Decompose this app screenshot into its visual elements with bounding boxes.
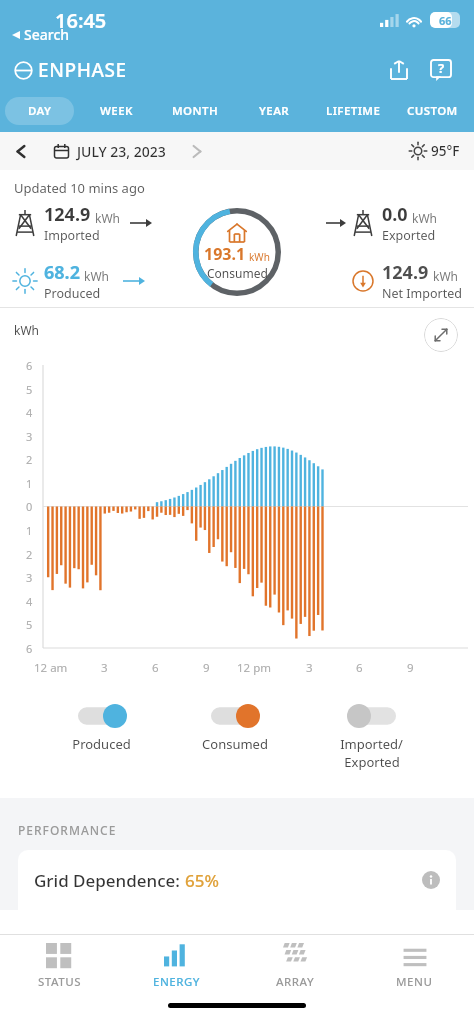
staticText: Consumed [207, 265, 268, 281]
staticText: 12 pm [237, 660, 271, 676]
button[interactable]: Share [382, 53, 416, 87]
staticText: 95°F [431, 142, 460, 160]
staticText: MENU [396, 974, 433, 990]
button[interactable]: Grid Dependence: [18, 850, 456, 910]
staticText: 9 [407, 660, 414, 676]
staticText: 16:45 [55, 7, 107, 34]
staticText: 2 [26, 452, 33, 467]
staticText: JULY 23, 2023 [77, 142, 166, 161]
staticText: Consumed [202, 735, 268, 753]
staticText: 3 [26, 429, 33, 444]
staticText: 6 [26, 358, 33, 373]
button[interactable]: LIFETIME [317, 97, 390, 125]
staticText: 0 [26, 499, 33, 514]
button[interactable]: STATUS [0, 935, 118, 997]
staticText: WEEK [100, 103, 133, 119]
staticText: 124.9 [382, 260, 429, 285]
staticText: 3 [101, 660, 108, 676]
button[interactable]: Toggle Consumed [209, 704, 261, 728]
staticText: 0.0 [382, 202, 408, 227]
staticText: LIFETIME [326, 103, 381, 119]
other: Info [422, 871, 440, 889]
staticText: 3 [306, 660, 313, 676]
button[interactable]: Next day [184, 139, 208, 163]
staticText: ? [438, 59, 445, 77]
button[interactable]: CUSTOM [396, 97, 469, 125]
staticText: Imported [44, 227, 100, 244]
button[interactable]: Expand chart [424, 318, 458, 352]
staticText: 4 [26, 405, 33, 420]
staticText: Exported [344, 753, 400, 771]
staticText: 5 [26, 382, 33, 397]
button[interactable]: YEAR [238, 97, 311, 125]
staticText: Updated 10 mins ago [14, 179, 145, 197]
staticText: 5 [26, 617, 33, 632]
staticText: 9 [203, 660, 210, 676]
staticText: Imported/ [340, 735, 403, 753]
button[interactable]: MONTH [159, 97, 232, 125]
staticText: ENERGY [153, 974, 201, 990]
staticText: DAY [28, 103, 52, 119]
staticText: Produced [44, 285, 101, 302]
staticText: Exported [382, 227, 436, 244]
button[interactable]: MENU [355, 935, 474, 997]
staticText: 6 [356, 660, 363, 676]
staticText: 3 [26, 570, 33, 585]
button[interactable]: Help [424, 53, 458, 87]
staticText: 12 am [34, 660, 68, 676]
staticText: Grid Dependence: [34, 869, 185, 892]
staticText: 124.9 [44, 202, 91, 227]
button[interactable]: ARRAY [236, 935, 355, 997]
staticText: 66 [439, 13, 452, 28]
button[interactable]: ENERGY [118, 935, 236, 997]
staticText: ARRAY [276, 974, 315, 990]
button[interactable]: Toggle Imported Exported [346, 704, 398, 728]
staticText: 1 [26, 523, 33, 538]
staticText: kWh [84, 268, 109, 284]
staticText: kWh [95, 210, 120, 226]
staticText: ENPHASE [38, 57, 127, 83]
staticText: kWh [433, 268, 458, 284]
staticText: 4 [26, 594, 33, 609]
staticText: 6 [152, 660, 159, 676]
staticText: PERFORMANCE [18, 822, 117, 838]
staticText: STATUS [38, 974, 81, 990]
staticText: CUSTOM [407, 103, 458, 119]
staticText: 2 [26, 547, 33, 562]
button[interactable]: WEEK [80, 97, 153, 125]
staticText: 6 [26, 641, 33, 656]
button[interactable]: Previous day [0, 132, 42, 170]
staticText: Produced [72, 735, 131, 753]
button[interactable]: DAY [5, 97, 74, 125]
staticText: kWh [412, 210, 437, 226]
staticText: kWh [249, 250, 270, 264]
staticText: 65% [185, 869, 219, 892]
staticText: YEAR [259, 103, 290, 119]
staticText: Net Imported [382, 285, 462, 302]
staticText: kWh [14, 322, 39, 338]
button[interactable]: Toggle Produced [76, 704, 128, 728]
staticText: MONTH [172, 103, 219, 119]
staticText: 1 [26, 476, 33, 491]
staticText: Search [24, 25, 70, 44]
staticText: 193.1 [204, 243, 246, 265]
staticText: 68.2 [44, 260, 80, 285]
